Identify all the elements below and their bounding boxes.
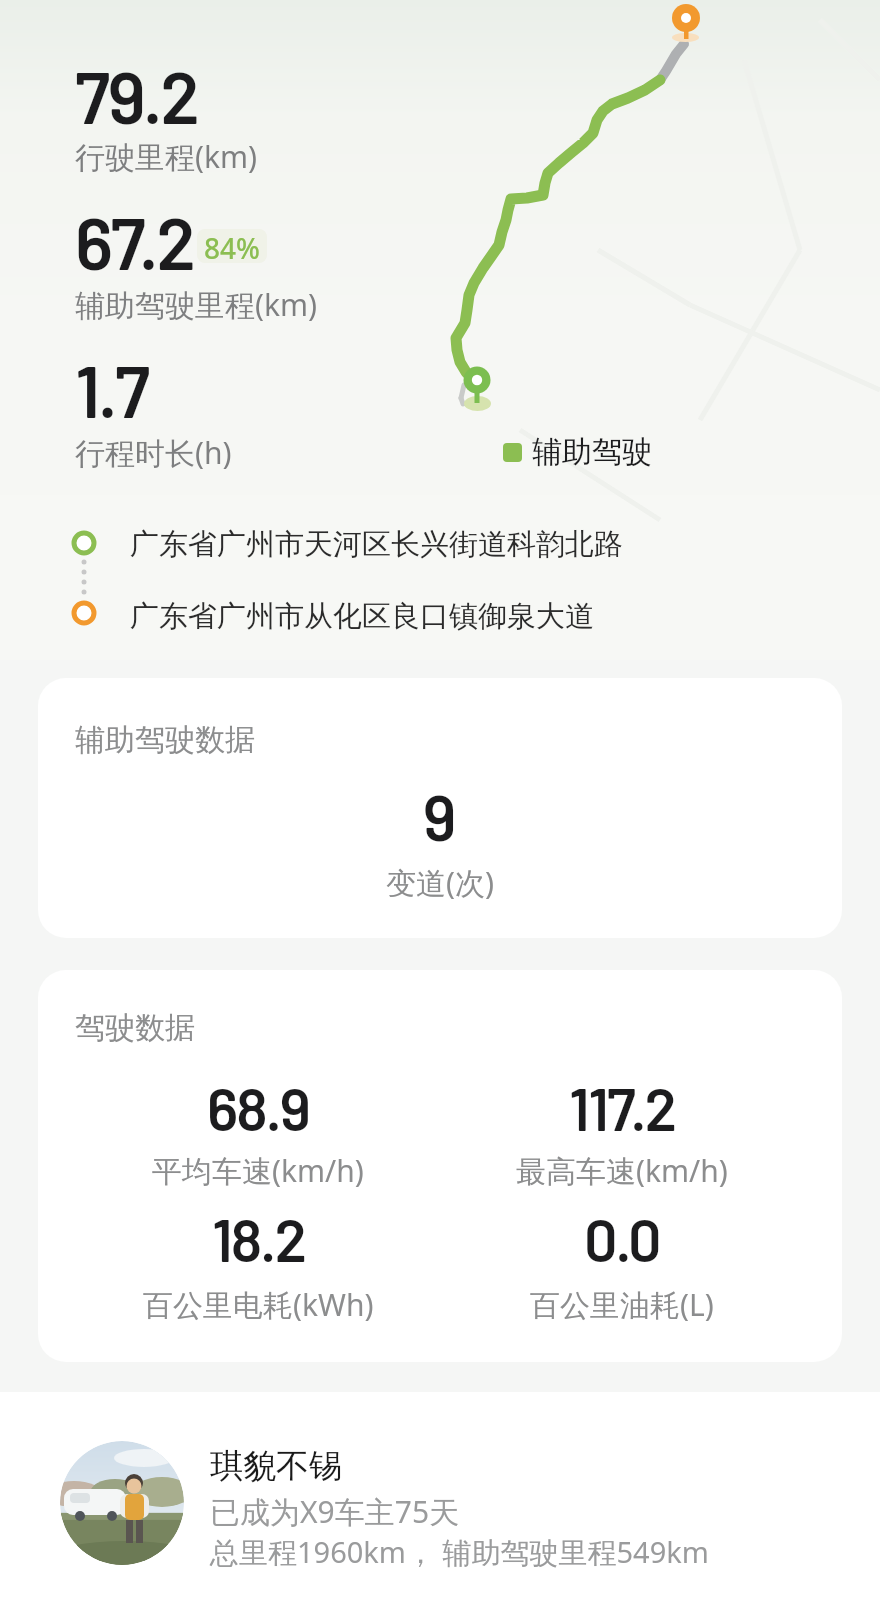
staticText: 最高车速(km/h) (516, 1150, 728, 1191)
staticText: 行驶里程(km) (75, 136, 258, 177)
staticText: 辅助驾驶 (532, 433, 652, 471)
staticText: 68.9 (207, 1072, 309, 1143)
staticText: 总里程1960km， 辅助驾驶里程549km (210, 1532, 709, 1572)
button[interactable]: 驾驶数据 (38, 970, 842, 1362)
staticText: 84% (204, 229, 260, 263)
button[interactable]: 辅助驾驶数据 (38, 678, 842, 938)
staticText: 百公里电耗(kWh) (143, 1284, 374, 1325)
staticText: 平均车速(km/h) (152, 1150, 364, 1191)
staticText: 辅助驾驶里程(km) (75, 284, 318, 325)
staticText: 变道(次) (386, 862, 494, 903)
staticText: 0.0 (584, 1203, 660, 1274)
staticText: 广东省广州市从化区良口镇御泉大道 (130, 598, 594, 635)
staticText: 行程时长(h) (75, 432, 232, 473)
staticText: 百公里油耗(L) (530, 1284, 714, 1325)
staticText: 已成为X9车主75天 (210, 1491, 460, 1532)
staticText: 辅助驾驶数据 (75, 721, 255, 759)
staticText: 琪貌不锡 (210, 1445, 342, 1487)
staticText: 79.2 (75, 52, 198, 138)
staticText: 1.7 (75, 346, 148, 432)
staticText: 117.2 (569, 1072, 675, 1143)
staticText: 广东省广州市天河区长兴街道科韵北路 (130, 526, 623, 563)
staticText: 9 (423, 778, 457, 854)
staticText: 67.2 (75, 198, 194, 284)
staticText: 驾驶数据 (75, 1009, 195, 1047)
button[interactable]: 琪貌不锡 (0, 1392, 880, 1615)
staticText: 18.2 (212, 1203, 305, 1274)
